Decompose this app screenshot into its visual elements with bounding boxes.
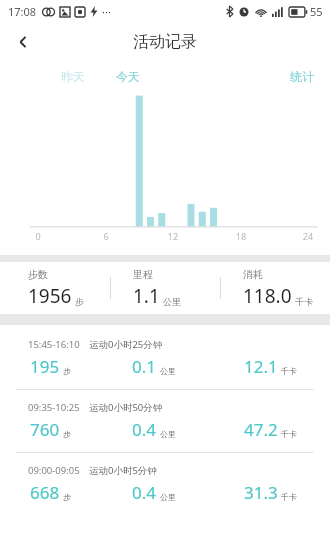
- staticText: 0.4: [132, 481, 157, 504]
- staticText: 公里: [160, 492, 176, 502]
- staticText: 千卡: [281, 429, 297, 439]
- staticText: 步数: [28, 268, 48, 281]
- staticText: 统计: [290, 69, 314, 84]
- button[interactable]: 09:35-10:25: [0, 390, 330, 453]
- staticText: 47.2: [244, 418, 278, 441]
- staticText: 55: [310, 4, 323, 19]
- staticText: 1.1: [133, 283, 160, 309]
- staticText: 运动0小时50分钟: [89, 401, 163, 414]
- staticText: 公里: [160, 366, 176, 376]
- staticText: 里程: [133, 268, 153, 281]
- staticText: 运动0小时25分钟: [89, 338, 163, 351]
- staticText: 0.4: [132, 418, 157, 441]
- button[interactable]: 15:45-16:10: [0, 327, 330, 390]
- staticText: 千卡: [295, 296, 313, 307]
- staticText: 118.0: [243, 283, 292, 309]
- staticText: 09:35-10:25: [28, 401, 80, 414]
- staticText: 15:45-16:10: [28, 338, 80, 351]
- button[interactable]: Back: [6, 25, 40, 59]
- staticText: 668: [30, 481, 60, 504]
- staticText: 12.1: [244, 355, 278, 378]
- staticText: 公里: [160, 429, 176, 439]
- staticText: 运动0小时5分钟: [89, 464, 157, 477]
- staticText: 31.3: [244, 481, 278, 504]
- staticText: 步: [75, 296, 84, 307]
- staticText: 18: [235, 230, 247, 242]
- staticText: 消耗: [243, 268, 263, 281]
- staticText: 195: [30, 355, 60, 378]
- staticText: 6: [100, 230, 112, 242]
- staticText: 今天: [116, 69, 140, 84]
- staticText: 09:00-09:05: [28, 464, 80, 477]
- staticText: 17:08: [8, 4, 37, 19]
- button[interactable]: 昨天: [55, 66, 91, 87]
- button[interactable]: 统计: [284, 66, 320, 87]
- staticText: 步: [63, 429, 71, 439]
- staticText: 12: [167, 230, 179, 242]
- staticText: 千卡: [281, 492, 297, 502]
- button[interactable]: 今天: [110, 66, 146, 87]
- staticText: 公里: [163, 296, 181, 307]
- staticText: 0.1: [132, 355, 157, 378]
- staticText: 步: [63, 366, 71, 376]
- staticText: 昨天: [61, 69, 85, 84]
- staticText: ···: [102, 4, 111, 19]
- staticText: 千卡: [281, 366, 297, 376]
- staticText: 24: [302, 230, 314, 242]
- staticText: 活动记录: [133, 32, 197, 52]
- staticText: 步: [63, 492, 71, 502]
- staticText: 760: [30, 418, 60, 441]
- button[interactable]: 09:00-09:05: [0, 453, 330, 515]
- staticText: 0: [32, 230, 44, 242]
- staticText: 1956: [28, 283, 72, 309]
